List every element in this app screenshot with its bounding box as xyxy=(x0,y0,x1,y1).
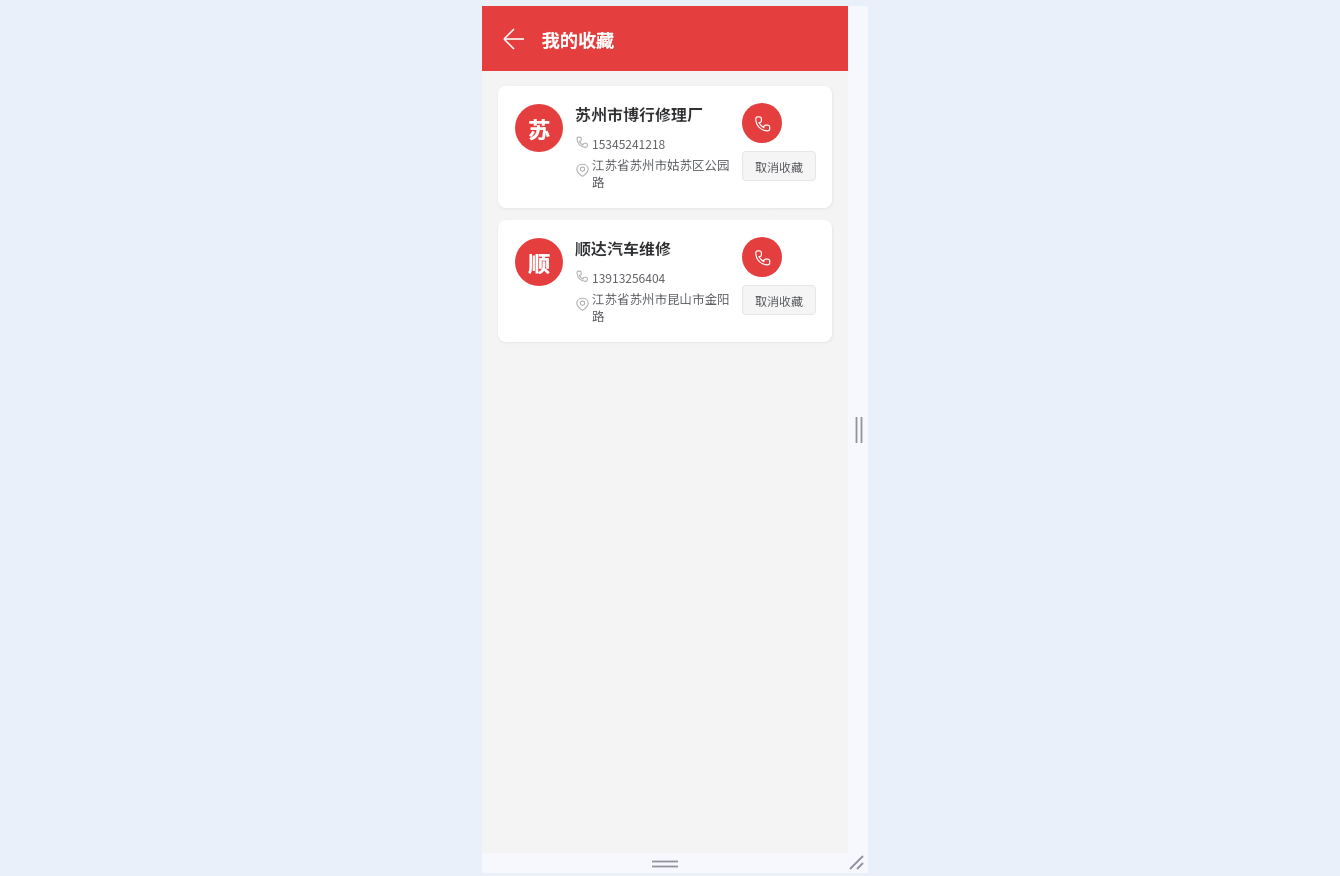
staticText: 苏 xyxy=(528,112,551,144)
button[interactable]: 顺 xyxy=(498,220,832,342)
staticText: 取消收藏 xyxy=(755,292,804,309)
button[interactable]: 取消收藏 xyxy=(742,285,816,315)
staticText: 苏州市博行修理厂 xyxy=(575,102,704,125)
button[interactable]: Call xyxy=(742,237,782,277)
button[interactable]: 取消收藏 xyxy=(742,151,816,181)
staticText: 顺达汽车维修 xyxy=(575,236,672,259)
staticText: 顺 xyxy=(528,246,551,278)
staticText: 取消收藏 xyxy=(755,158,804,175)
staticText: 江苏省苏州市姑苏区公园路 xyxy=(592,155,732,190)
staticText: 15345241218 xyxy=(592,135,666,152)
button[interactable]: Back xyxy=(494,19,534,59)
staticText: 江苏省苏州市昆山市金阳路 xyxy=(592,289,732,324)
staticText: 我的收藏 xyxy=(542,26,614,52)
staticText: 13913256404 xyxy=(592,269,666,286)
button[interactable]: 苏 xyxy=(498,86,832,208)
button[interactable]: Call xyxy=(742,103,782,143)
